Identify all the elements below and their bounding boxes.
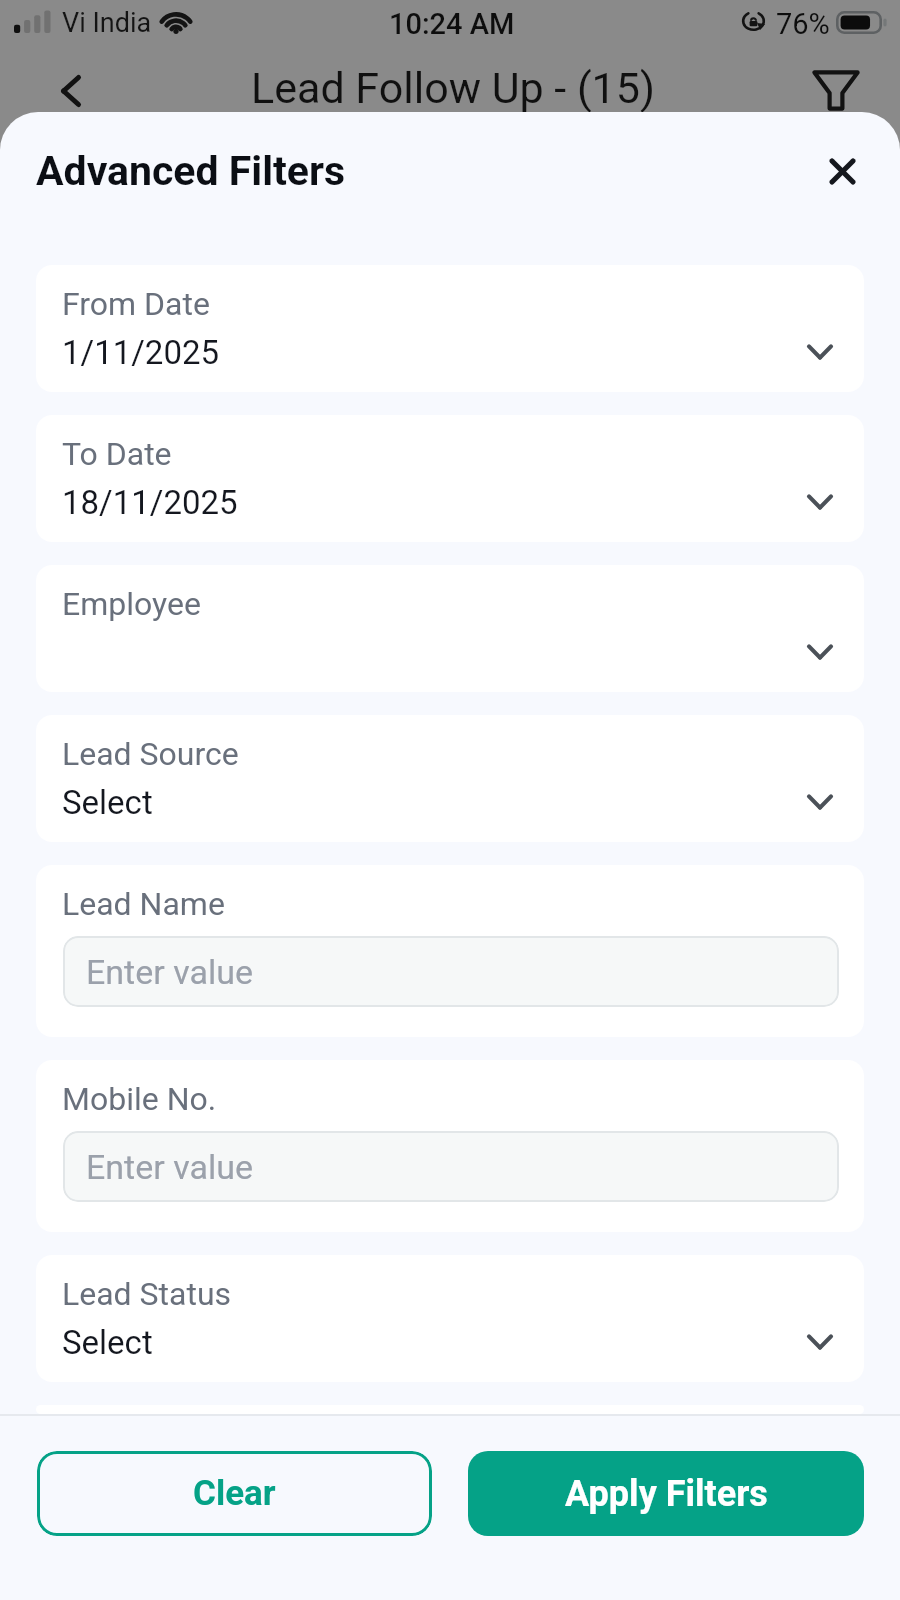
staticText: 18/11/2025 <box>62 483 238 522</box>
staticText: Employee <box>62 585 201 623</box>
button[interactable]: Lead Status <box>36 1255 864 1382</box>
staticText: Apply Filters <box>565 1473 768 1515</box>
button[interactable]: Filter <box>806 60 866 120</box>
staticText: Advanced Filters <box>36 147 346 195</box>
staticText: Lead Name <box>62 885 225 923</box>
staticText: Enter value <box>86 952 253 992</box>
staticText: Mobile No. <box>62 1080 217 1118</box>
button[interactable]: Enter value <box>63 936 839 1007</box>
staticText: To Date <box>62 435 172 473</box>
staticText: Vi India <box>62 7 152 39</box>
staticText: Enter value <box>86 1147 253 1187</box>
staticText: From Date <box>62 285 210 323</box>
button[interactable]: Apply Filters <box>468 1451 864 1536</box>
staticText: Clear <box>193 1473 276 1514</box>
button[interactable]: Open Lead Source options <box>793 775 847 829</box>
button[interactable]: From Date <box>36 265 864 392</box>
button[interactable]: Open To Date options <box>793 475 847 529</box>
staticText: 76% <box>776 7 830 41</box>
button[interactable]: Mobile No. <box>36 1060 864 1232</box>
button[interactable]: Close <box>813 142 871 200</box>
button[interactable]: Lead Name <box>36 865 864 1037</box>
staticText: Select <box>62 1323 153 1362</box>
staticText: Lead Follow Up - (15) <box>3 63 900 113</box>
button[interactable]: Enter value <box>63 1131 839 1202</box>
button[interactable]: Open Lead Status options <box>793 1315 847 1369</box>
staticText: 1/11/2025 <box>62 333 220 372</box>
button[interactable]: Back <box>41 61 101 121</box>
staticText: 10:24 AM <box>389 7 515 41</box>
staticText: Lead Source <box>62 735 239 773</box>
button[interactable]: Lead Source <box>36 715 864 842</box>
button[interactable]: Open Employee options <box>793 625 847 679</box>
staticText: Select <box>62 783 153 822</box>
button[interactable]: To Date <box>36 415 864 542</box>
button[interactable]: Open From Date options <box>793 325 847 379</box>
button[interactable]: Clear <box>37 1451 432 1536</box>
button[interactable]: Employee <box>36 565 864 692</box>
staticText: Lead Status <box>62 1275 232 1313</box>
